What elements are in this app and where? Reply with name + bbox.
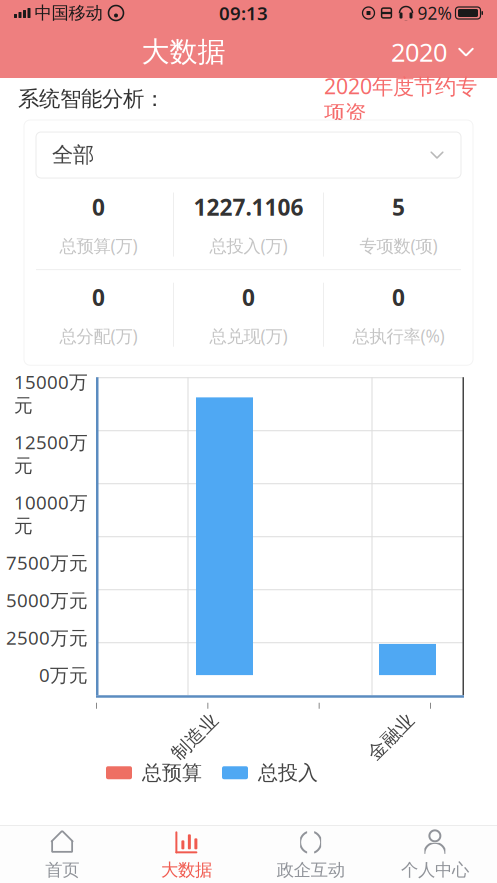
staticText: 个人中心 <box>401 859 469 881</box>
staticText: 系统智能分析： <box>18 86 165 112</box>
staticText: 总分配(万) <box>59 324 137 347</box>
staticText: 92% <box>417 1 451 24</box>
staticText: 0 <box>92 282 105 312</box>
staticText: 金融业 <box>362 725 419 748</box>
button[interactable]: 全部 <box>36 132 461 178</box>
staticText: 2020 <box>391 35 447 69</box>
staticText: 09:13 <box>219 1 268 25</box>
staticText: 10000万元 <box>14 490 88 538</box>
staticText: 专项数(项) <box>359 234 437 257</box>
staticText: 0 <box>392 282 405 312</box>
staticText: 总投入 <box>258 760 318 785</box>
staticText: 制造业 <box>166 725 223 748</box>
button[interactable]: 政企互动 <box>248 822 373 883</box>
button[interactable]: 首页 <box>0 822 124 883</box>
staticText: 12500万元 <box>14 430 88 477</box>
staticText: 2020年度节约专项资 <box>324 72 477 126</box>
staticText: 5000万元 <box>6 588 88 612</box>
button[interactable]: 大数据 <box>124 822 248 883</box>
button[interactable]: 2020 <box>383 27 483 77</box>
staticText: 全部 <box>52 142 94 168</box>
button[interactable]: 个人中心 <box>373 822 497 883</box>
staticText: 2500万元 <box>6 625 88 650</box>
staticText: 1227.1106 <box>193 192 303 222</box>
staticText: 大数据 <box>161 859 212 881</box>
staticText: 7500万元 <box>6 550 88 575</box>
staticText: 中国移动 <box>34 2 102 24</box>
staticText: 15000万元 <box>14 369 88 417</box>
staticText: 总预算 <box>142 760 202 785</box>
staticText: 总投入(万) <box>209 234 287 257</box>
staticText: 0 <box>92 192 105 222</box>
staticText: 5 <box>392 192 405 222</box>
staticText: 0万元 <box>39 662 88 687</box>
staticText: 0 <box>242 282 255 312</box>
staticText: 政企互动 <box>277 859 345 881</box>
staticText: 首页 <box>45 859 79 881</box>
staticText: 总预算(万) <box>59 234 137 257</box>
staticText: 大数据 <box>141 35 225 69</box>
staticText: 总兑现(万) <box>209 324 287 347</box>
staticText: 总执行率(%) <box>352 324 444 347</box>
